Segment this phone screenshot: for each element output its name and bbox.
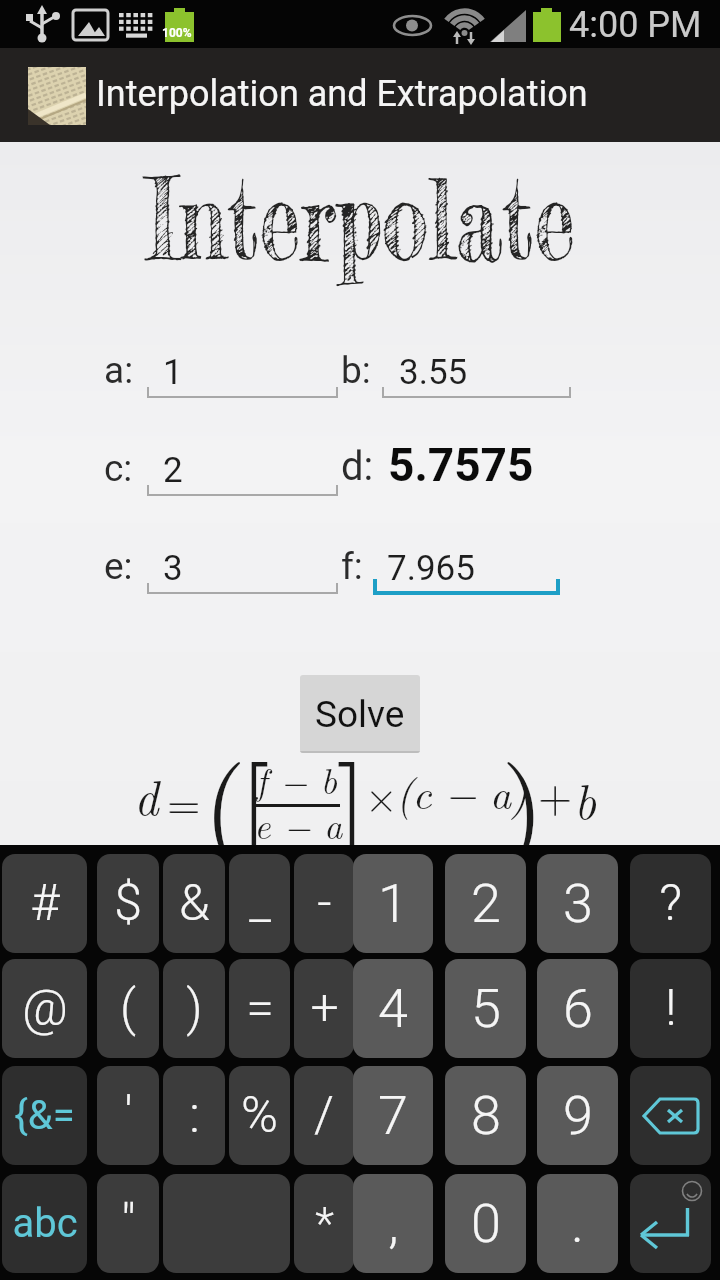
button[interactable]: !	[630, 959, 711, 1058]
staticText: ×	[365, 765, 398, 825]
button[interactable]: "	[97, 1174, 159, 1273]
staticText: f:	[341, 545, 363, 588]
staticText: 4:00 PM	[569, 4, 702, 46]
button[interactable]: _	[229, 854, 290, 953]
staticText: ?	[659, 874, 682, 933]
staticText: a:	[104, 349, 134, 392]
staticText: d	[134, 761, 159, 829]
button[interactable]: #	[2, 854, 87, 953]
staticText: &	[179, 874, 210, 933]
button[interactable]: 2	[445, 854, 526, 953]
staticText: b	[574, 765, 597, 833]
staticText: )	[501, 720, 545, 845]
staticText: f − b	[256, 753, 338, 804]
staticText: 5	[471, 977, 501, 1040]
staticText: Interpolate	[146, 151, 575, 288]
button[interactable]: +	[294, 959, 354, 1058]
staticText: 1	[378, 872, 408, 935]
staticText: -	[317, 874, 332, 933]
staticText: 7.965	[387, 548, 475, 589]
button[interactable]: :	[163, 1066, 225, 1165]
button[interactable]: ,	[353, 1174, 433, 1273]
button[interactable]: {&=	[2, 1066, 87, 1165]
button[interactable]	[163, 1174, 290, 1273]
button[interactable]: =	[229, 959, 290, 1058]
staticText: :	[189, 1086, 200, 1145]
button[interactable]: $	[97, 854, 159, 953]
staticText: 3	[163, 548, 183, 589]
staticText: 9	[563, 1084, 593, 1147]
button[interactable]: 5	[445, 959, 526, 1058]
staticText: b:	[341, 349, 371, 392]
staticText: #	[30, 874, 60, 933]
staticText: =	[167, 771, 201, 832]
button[interactable]	[147, 538, 338, 600]
button[interactable]: ?	[630, 854, 711, 953]
staticText: +	[310, 979, 339, 1038]
staticText: (	[203, 720, 247, 845]
staticText: ,	[388, 1192, 399, 1255]
button[interactable]: 9	[537, 1066, 618, 1165]
staticText: 7	[378, 1084, 408, 1147]
button[interactable]	[630, 1174, 711, 1273]
staticText: 3	[563, 872, 593, 935]
staticText: e:	[104, 545, 133, 588]
button[interactable]: )	[163, 959, 225, 1058]
button[interactable]: 1	[353, 854, 433, 953]
button[interactable]: .	[537, 1174, 618, 1273]
staticText: 3.55	[399, 352, 468, 393]
button[interactable]: @	[2, 959, 87, 1058]
staticText: [	[238, 718, 270, 845]
button[interactable]: 4	[353, 959, 433, 1058]
staticText: .	[571, 1192, 584, 1255]
staticText: e − a	[254, 798, 343, 845]
staticText: $	[114, 874, 142, 933]
staticText: d:	[341, 443, 374, 490]
button[interactable]: 6	[537, 959, 618, 1058]
button[interactable]: 3	[537, 854, 618, 953]
staticText: +	[538, 762, 573, 824]
staticText: )	[186, 979, 203, 1038]
staticText: Solve	[315, 693, 405, 736]
button[interactable]: abc	[2, 1174, 87, 1273]
staticText: abc	[12, 1200, 78, 1247]
button[interactable]	[382, 342, 571, 404]
staticText: 4	[378, 977, 408, 1040]
staticText: {&=	[14, 1092, 75, 1139]
staticText: '	[124, 1086, 133, 1145]
button[interactable]: 8	[445, 1066, 526, 1165]
button[interactable]: &	[163, 854, 225, 953]
staticText: "	[121, 1194, 136, 1253]
staticText: =	[246, 979, 274, 1038]
button[interactable]: 7	[353, 1066, 433, 1165]
staticText: 0	[471, 1192, 501, 1255]
button[interactable]: *	[294, 1174, 354, 1273]
button[interactable]: -	[294, 854, 354, 953]
staticText: @	[22, 979, 68, 1038]
staticText: 2	[163, 450, 183, 491]
button[interactable]: Solve	[300, 675, 420, 753]
button[interactable]	[28, 67, 86, 125]
button[interactable]: '	[97, 1066, 159, 1165]
staticText: c:	[104, 447, 133, 490]
button[interactable]	[147, 342, 338, 404]
button[interactable]: /	[294, 1066, 354, 1165]
staticText: %	[241, 1086, 278, 1145]
staticText: *	[315, 1198, 334, 1250]
button[interactable]: (	[97, 959, 159, 1058]
staticText: 8	[471, 1084, 501, 1147]
button[interactable]	[630, 1066, 711, 1165]
button[interactable]: %	[229, 1066, 290, 1165]
staticText: !	[665, 979, 677, 1038]
staticText: 100%	[162, 26, 192, 40]
staticText: ]	[336, 718, 368, 845]
staticText: 1	[163, 352, 183, 393]
staticText: (c − a)	[396, 762, 527, 821]
staticText: 6	[563, 977, 593, 1040]
staticText: (	[120, 979, 136, 1038]
button[interactable]	[373, 538, 560, 600]
button[interactable]	[147, 440, 338, 502]
staticText: Interpolation and Extrapolation	[96, 73, 588, 115]
staticText: _	[249, 874, 271, 933]
button[interactable]: 0	[445, 1174, 526, 1273]
